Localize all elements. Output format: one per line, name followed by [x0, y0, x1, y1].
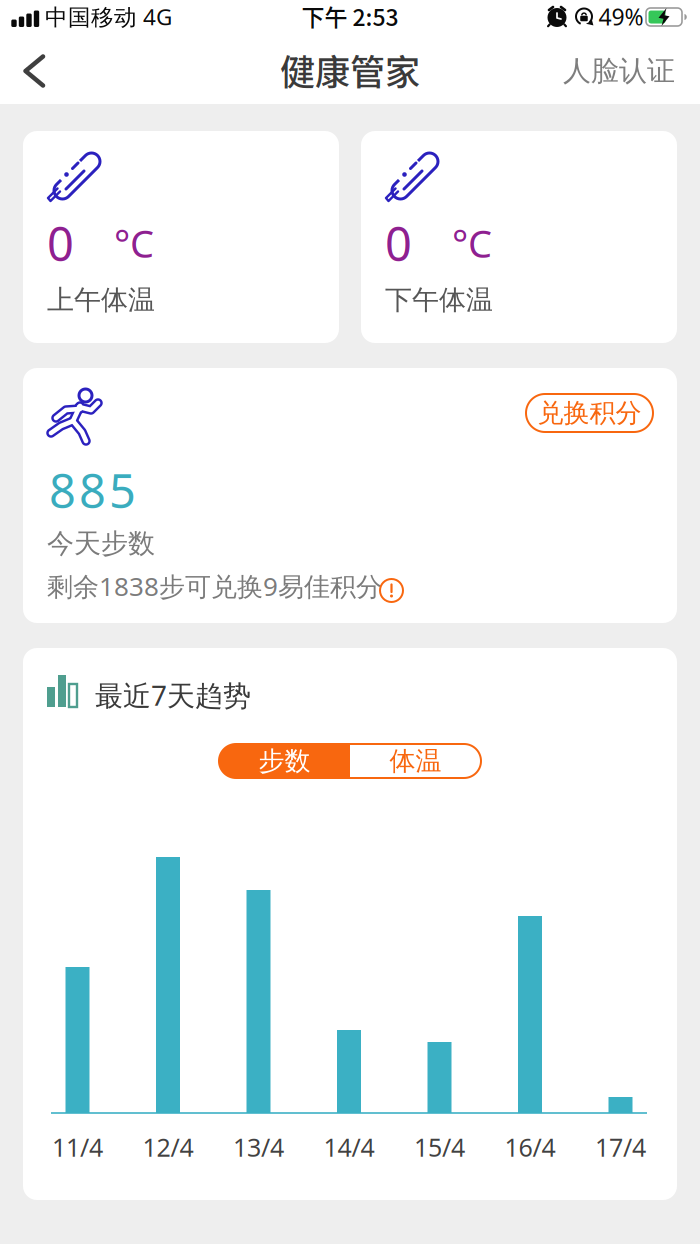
staticText: 12/4: [142, 1130, 193, 1164]
staticText: 13/4: [233, 1130, 284, 1164]
staticText: 下午体温: [385, 283, 493, 317]
staticText: 15/4: [414, 1130, 465, 1164]
staticText: 上午体温: [47, 283, 155, 317]
staticText: 步数: [258, 745, 310, 777]
staticText: 兑换积分: [537, 397, 641, 429]
staticText: 0: [385, 211, 412, 275]
button[interactable]: 体温: [350, 744, 481, 778]
staticText: 0: [47, 211, 74, 275]
staticText: 中国移动 4G: [45, 1, 172, 32]
button[interactable]: Back: [25, 56, 45, 86]
staticText: 16/4: [504, 1130, 555, 1164]
button[interactable]: 兑换说明: [379, 578, 403, 602]
staticText: 剩余1838步可兑换9易佳积分: [47, 568, 382, 604]
staticText: 49%: [598, 1, 643, 32]
staticText: °C: [452, 217, 492, 269]
staticText: 最近7天趋势: [95, 676, 251, 714]
staticText: 885: [49, 458, 136, 522]
staticText: 今天步数: [47, 526, 155, 560]
staticText: 健康管家: [280, 45, 420, 95]
staticText: 下午 2:53: [301, 0, 398, 33]
button[interactable]: 兑换积分: [526, 394, 653, 432]
staticText: 体温: [389, 745, 441, 777]
staticText: 人脸认证: [563, 53, 675, 89]
staticText: 14/4: [323, 1130, 374, 1164]
button[interactable]: 步数: [219, 744, 350, 778]
staticText: °C: [114, 217, 154, 269]
staticText: 17/4: [595, 1130, 646, 1164]
staticText: 11/4: [52, 1130, 103, 1164]
button[interactable]: 人脸认证: [525, 53, 675, 89]
